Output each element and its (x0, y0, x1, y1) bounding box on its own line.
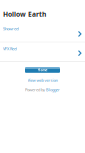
button[interactable]: Home (25, 67, 60, 73)
staticText: Showreel (3, 26, 19, 31)
staticText: VFX Reel (3, 46, 17, 51)
button[interactable]: View web version (27, 77, 57, 83)
staticText: Blogger (46, 87, 60, 92)
staticText: Home (37, 68, 47, 72)
staticText: Powered by (25, 87, 45, 92)
button[interactable]: VFX Reel (0, 42, 85, 62)
staticText: View web version (27, 77, 57, 83)
button[interactable]: Showreel (0, 23, 85, 42)
button[interactable]: Blogger (46, 87, 60, 92)
staticText: Hollow Earth (3, 9, 46, 19)
